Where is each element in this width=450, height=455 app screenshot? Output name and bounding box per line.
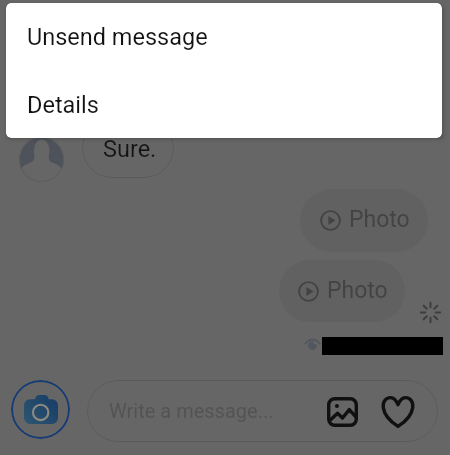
button[interactable]: Send photo xyxy=(325,395,359,429)
staticText: Details xyxy=(27,91,99,119)
button[interactable]: Write a message... xyxy=(87,380,438,442)
button[interactable]: Unsend message xyxy=(6,3,442,66)
staticText: Photo xyxy=(349,206,410,233)
button[interactable]: Photo xyxy=(300,189,428,252)
staticText: Photo xyxy=(327,277,388,304)
button[interactable]: Photo xyxy=(279,260,405,322)
button[interactable]: Sure. xyxy=(82,118,174,178)
staticText: Unsend message xyxy=(27,23,208,51)
button[interactable]: Open camera xyxy=(11,380,70,439)
button[interactable]: Details xyxy=(6,66,442,138)
staticText: Sure. xyxy=(103,135,157,163)
button[interactable]: Send like xyxy=(379,393,417,431)
staticText: Write a message... xyxy=(109,399,274,422)
